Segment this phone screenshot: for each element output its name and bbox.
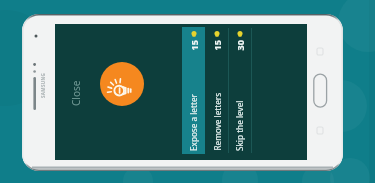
staticText: 30 [233, 39, 245, 50]
staticText: Remove letters [211, 92, 222, 150]
button[interactable]: Remove letters [205, 27, 228, 154]
staticText: Expose a letter [188, 94, 199, 151]
staticText: SAMSUNG [40, 72, 46, 98]
staticText: Skip the level [234, 100, 245, 151]
button[interactable]: Skip the level [228, 27, 251, 154]
staticText: 15 [210, 39, 222, 50]
button[interactable]: Hint [100, 62, 144, 106]
staticText: Close [69, 80, 83, 106]
staticText: 15 [187, 39, 199, 50]
button[interactable]: Expose a letter [182, 27, 205, 154]
